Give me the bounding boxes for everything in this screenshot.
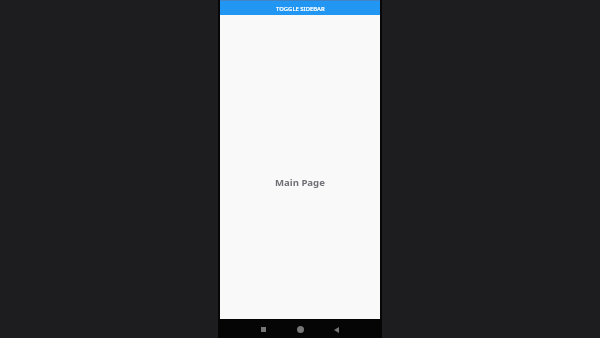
- button[interactable]: Back: [318, 319, 354, 338]
- button[interactable]: Home: [282, 319, 318, 338]
- button[interactable]: Recent apps: [249, 319, 278, 338]
- button[interactable]: TOGGLE SIDEBAR: [220, 0, 380, 15]
- staticText: Main Page: [275, 176, 325, 189]
- staticText: TOGGLE SIDEBAR: [276, 5, 325, 13]
